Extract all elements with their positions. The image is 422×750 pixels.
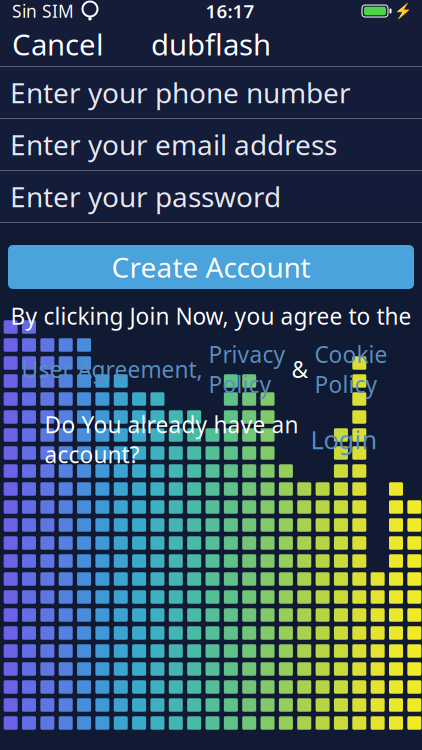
- staticText: &: [285, 354, 314, 384]
- button[interactable]: Cookie Policy: [314, 339, 387, 399]
- button[interactable]: Enter your phone number: [0, 67, 422, 118]
- staticText: Login: [310, 423, 377, 456]
- staticText: dubflash: [151, 24, 271, 63]
- button[interactable]: Cancel: [0, 18, 104, 69]
- staticText: Do You already have an account?: [44, 409, 298, 469]
- staticText: Enter your email address: [10, 126, 337, 163]
- staticText: Enter your password: [10, 178, 281, 215]
- staticText: Create Account: [111, 248, 310, 286]
- button[interactable]: Login: [310, 423, 377, 456]
- button[interactable]: User Agreement,: [21, 354, 202, 384]
- staticText: Cancel: [12, 24, 104, 63]
- staticText: Privacy Policy: [208, 339, 285, 399]
- button[interactable]: Enter your password: [0, 171, 422, 222]
- staticText: By clicking Join Now, you agree to the: [10, 301, 411, 331]
- button[interactable]: Enter your email address: [0, 119, 422, 170]
- button[interactable]: Create Account: [8, 245, 414, 289]
- staticText: User Agreement,: [21, 354, 202, 384]
- staticText: ⚡: [394, 3, 412, 19]
- staticText: 16:17: [205, 0, 254, 23]
- button[interactable]: Privacy Policy: [208, 339, 285, 399]
- staticText: Enter your phone number: [10, 74, 351, 111]
- staticText: Cookie Policy: [314, 339, 387, 399]
- staticText: Sin SIM: [12, 0, 74, 22]
